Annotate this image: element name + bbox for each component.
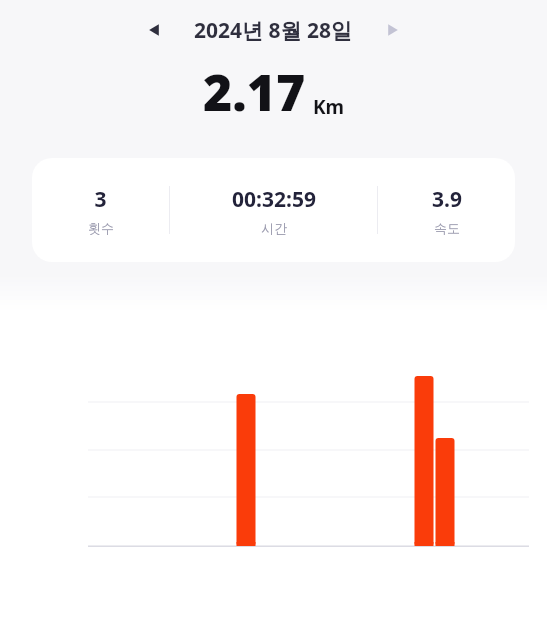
staticText: 00:32:59 [232,185,316,214]
button[interactable]: Next day [375,12,411,48]
button[interactable]: 3 [32,158,169,262]
button[interactable]: 3.9 [378,158,515,262]
staticText: 2024년 8월 28일 [194,16,353,45]
button[interactable]: 00:32:59 [170,158,377,262]
staticText: 시간 [261,220,287,236]
staticText: 횟수 [88,220,114,236]
staticText: Km [313,94,345,120]
staticText: 2.17 [203,58,306,126]
button[interactable]: Previous day [136,12,172,48]
staticText: 속도 [434,220,460,236]
staticText: 3 [94,185,107,214]
staticText: 3.9 [432,185,462,214]
